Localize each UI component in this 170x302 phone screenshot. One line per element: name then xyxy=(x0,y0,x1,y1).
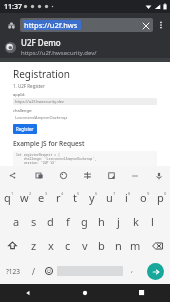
button[interactable]: Recent apps xyxy=(113,284,170,302)
staticText: Registration xyxy=(13,67,70,81)
button[interactable]: / xyxy=(25,258,41,284)
button[interactable]: https://u2f.hwsecurity.dev/ xyxy=(20,18,153,32)
button[interactable]: Backspace xyxy=(144,233,170,258)
staticText: U2F Demo xyxy=(21,37,61,48)
staticText: appId: xyxy=(13,92,26,97)
staticText: y xyxy=(89,190,95,205)
staticText: o xyxy=(140,190,147,205)
staticText: version: 'U2F_V2' xyxy=(16,161,57,164)
button[interactable]: Shift xyxy=(0,233,25,258)
button[interactable]: Clear xyxy=(139,19,152,32)
button[interactable]: g xyxy=(76,209,93,233)
button[interactable]: Enter xyxy=(147,263,164,280)
button[interactable]: j xyxy=(110,209,127,233)
button[interactable]: c xyxy=(59,233,76,258)
staticText: 2 xyxy=(29,191,32,196)
button[interactable]: Share xyxy=(0,166,24,185)
staticText: https://u2f.hwsecurity.dev xyxy=(15,99,64,104)
button[interactable]: s xyxy=(25,209,42,233)
staticText: 8 xyxy=(128,191,131,196)
staticText: let registerRequest = { xyxy=(16,153,60,157)
staticText: 9 xyxy=(147,191,150,196)
button[interactable]: Back xyxy=(0,284,56,302)
button[interactable]: o xyxy=(136,185,153,209)
button[interactable]: https://u2f.hwsecurity.dev xyxy=(13,98,157,105)
staticText: , xyxy=(131,265,133,275)
button[interactable]: x xyxy=(42,233,59,258)
button[interactable]: U2F Demo xyxy=(0,36,170,58)
staticText: u xyxy=(106,190,113,205)
button[interactable]: e xyxy=(34,185,51,209)
button[interactable]: h xyxy=(93,209,110,233)
button[interactable]: m xyxy=(127,233,144,258)
staticText: x xyxy=(48,238,54,253)
button[interactable]: Emoji xyxy=(41,258,57,284)
button[interactable]: , xyxy=(123,258,140,284)
button[interactable]: v xyxy=(76,233,93,258)
button[interactable]: i xyxy=(119,185,136,209)
staticText: r xyxy=(56,190,61,205)
button[interactable]: t xyxy=(68,185,85,209)
staticText: LzxcvnxnvlAnqnvnOxzkrnqz xyxy=(15,115,68,120)
button[interactable]: p xyxy=(153,185,170,209)
staticText: w xyxy=(20,190,29,205)
staticText: n xyxy=(115,238,122,253)
button[interactable]: Settings xyxy=(79,166,95,185)
staticText: c xyxy=(65,238,71,253)
staticText: a xyxy=(13,214,20,229)
button[interactable]: n xyxy=(110,233,127,258)
button[interactable]: LzxcvnxnvlAnqnvnOxzkrnqz xyxy=(13,114,157,121)
staticText: b xyxy=(98,238,105,253)
button[interactable]: Theme xyxy=(55,166,71,185)
button[interactable]: q xyxy=(0,185,17,209)
button[interactable]: d xyxy=(42,209,59,233)
staticText: 6 xyxy=(95,191,98,196)
staticText: k xyxy=(133,214,139,229)
staticText: challenge: xyxy=(13,108,33,113)
staticText: 7 xyxy=(113,191,116,196)
staticText: 0 xyxy=(164,191,167,196)
staticText: l xyxy=(151,214,154,229)
staticText: m xyxy=(130,238,141,253)
staticText: 4 xyxy=(61,191,64,196)
button[interactable]: k xyxy=(127,209,144,233)
staticText: 5 xyxy=(77,191,80,196)
staticText: https://u2f.hwsecurity.dev/ xyxy=(21,49,97,57)
button[interactable]: u xyxy=(102,185,119,209)
staticText: j xyxy=(117,214,120,229)
staticText: 11:37 xyxy=(4,2,22,12)
staticText: f xyxy=(66,214,70,229)
button[interactable]: Incognito xyxy=(3,17,19,33)
staticText: t xyxy=(73,190,77,205)
button[interactable]: y xyxy=(85,185,102,209)
button[interactable]: Clipboard xyxy=(103,166,119,185)
staticText: g xyxy=(81,214,88,229)
button[interactable]: ?123 xyxy=(0,258,25,284)
staticText: e xyxy=(38,190,45,205)
staticText: ?123 xyxy=(6,267,20,276)
staticText: s xyxy=(31,214,37,229)
button[interactable]: Register xyxy=(16,126,34,132)
staticText: v xyxy=(82,238,88,253)
staticText: Example JS for Request xyxy=(13,139,85,148)
button[interactable]: a xyxy=(8,209,25,233)
button[interactable]: w xyxy=(17,185,34,209)
staticText: d xyxy=(47,214,54,229)
staticText: Register xyxy=(16,126,34,132)
button[interactable]: More options xyxy=(153,17,169,33)
staticText: p xyxy=(157,190,164,205)
staticText: h xyxy=(98,214,105,229)
button[interactable]: z xyxy=(25,233,42,258)
button[interactable]: Voice input xyxy=(151,166,167,185)
button[interactable]: Stickers xyxy=(31,166,47,185)
button[interactable]: b xyxy=(93,233,110,258)
button[interactable]: f xyxy=(59,209,76,233)
button[interactable]: l xyxy=(144,209,161,233)
button[interactable]: More xyxy=(127,166,143,185)
staticText: 1. U2F Register xyxy=(13,83,45,89)
button[interactable]: r xyxy=(51,185,68,209)
staticText: q xyxy=(4,190,11,205)
button[interactable]: Home xyxy=(56,284,113,302)
staticText: / xyxy=(32,266,35,277)
